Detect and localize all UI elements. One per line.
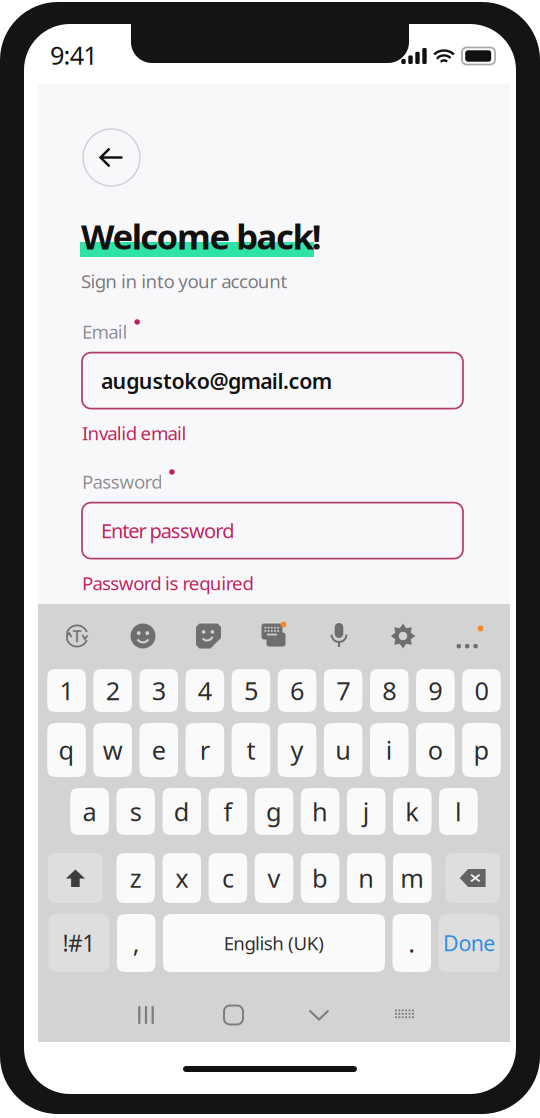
button[interactable]: Voice input <box>328 623 350 649</box>
button[interactable]: Hide keyboard <box>308 1006 330 1024</box>
staticText: 6 <box>290 674 304 707</box>
button[interactable]: 3 <box>139 669 178 712</box>
button[interactable]: 7 <box>324 669 362 712</box>
staticText: h <box>312 795 328 828</box>
staticText: q <box>58 733 74 767</box>
staticText: T <box>72 625 81 647</box>
button[interactable]: t <box>232 723 270 777</box>
staticText: English (UK) <box>224 931 324 955</box>
staticText: 2 <box>106 674 120 707</box>
staticText: 7 <box>336 674 350 707</box>
button[interactable]: Back <box>83 129 140 186</box>
staticText: a <box>83 795 97 828</box>
button[interactable]: 4 <box>185 669 224 712</box>
button[interactable]: 2 <box>93 669 132 712</box>
staticText: 9 <box>428 674 442 707</box>
staticText: o <box>428 733 443 767</box>
button[interactable]: 9 <box>416 669 455 712</box>
staticText: Password is required <box>82 571 254 595</box>
button[interactable]: Keyboard settings <box>390 623 415 648</box>
staticText: Invalid email <box>82 421 186 445</box>
button[interactable]: u <box>324 723 362 777</box>
button[interactable]: 5 <box>232 669 270 712</box>
staticText: s <box>130 795 142 828</box>
button[interactable]: x <box>162 853 201 903</box>
staticText: 3 <box>152 674 166 707</box>
button[interactable]: a <box>70 788 109 835</box>
staticText: 4 <box>198 674 212 707</box>
button[interactable]: e <box>139 723 178 777</box>
button[interactable]: augustoko@gmail.com <box>82 353 463 409</box>
staticText: d <box>174 795 190 828</box>
button[interactable]: Shift <box>48 853 103 903</box>
button[interactable]: Keyboard modes <box>261 623 287 648</box>
staticText: j <box>363 795 370 828</box>
button[interactable]: m <box>393 853 432 903</box>
staticText: 5 <box>244 674 258 707</box>
staticText: Welcome back! <box>81 213 322 259</box>
button[interactable]: Keyboard layout <box>395 1009 415 1020</box>
button[interactable]: Home <box>224 1005 243 1024</box>
button[interactable]: z <box>116 853 155 903</box>
button[interactable]: r <box>185 723 224 777</box>
staticText: Sign in into your account <box>81 269 288 293</box>
button[interactable]: f <box>209 788 247 835</box>
staticText: !#1 <box>62 928 95 958</box>
button[interactable]: . <box>392 914 431 972</box>
button[interactable]: w <box>93 723 132 777</box>
button[interactable]: s <box>116 788 155 835</box>
button[interactable]: g <box>255 788 293 835</box>
staticText: c <box>222 861 234 895</box>
button[interactable]: More options <box>456 623 484 648</box>
button[interactable]: 1 <box>47 669 86 712</box>
button[interactable]: d <box>162 788 201 835</box>
staticText: l <box>455 795 462 828</box>
staticText: augustoko@gmail.com <box>101 366 332 395</box>
staticText: z <box>130 861 142 895</box>
button[interactable]: !#1 <box>48 914 109 972</box>
button[interactable]: Done <box>439 914 500 972</box>
button[interactable]: y <box>278 723 316 777</box>
button[interactable]: j <box>347 788 385 835</box>
staticText: v <box>267 861 280 895</box>
button[interactable]: 8 <box>370 669 409 712</box>
staticText: 9:41 <box>50 38 97 72</box>
button[interactable]: b <box>301 853 339 903</box>
button[interactable]: 6 <box>278 669 316 712</box>
button[interactable]: k <box>393 788 432 835</box>
staticText: f <box>223 795 232 828</box>
button[interactable]: l <box>439 788 478 835</box>
button[interactable]: Translate <box>64 623 90 649</box>
button[interactable]: Recent apps <box>133 1005 159 1025</box>
button[interactable]: p <box>462 723 501 777</box>
button[interactable]: Enter password <box>82 503 463 559</box>
staticText: Email <box>82 319 127 344</box>
staticText: u <box>335 733 351 767</box>
button[interactable]: h <box>301 788 339 835</box>
staticText: e <box>152 733 166 767</box>
button[interactable]: Backspace <box>445 853 500 903</box>
staticText: g <box>266 795 282 828</box>
staticText: . <box>408 926 415 960</box>
staticText: 1 <box>59 674 73 707</box>
button[interactable]: n <box>347 853 385 903</box>
staticText: 8 <box>382 674 396 707</box>
staticText: y <box>291 733 304 767</box>
button[interactable]: q <box>47 723 86 777</box>
staticText: t <box>246 733 255 767</box>
staticText: i <box>386 733 393 767</box>
staticText: n <box>358 861 374 895</box>
button[interactable]: , <box>117 914 155 972</box>
button[interactable]: o <box>416 723 455 777</box>
button[interactable]: Stickers <box>196 623 221 648</box>
button[interactable]: 0 <box>462 669 501 712</box>
button[interactable]: i <box>370 723 409 777</box>
staticText: m <box>400 861 424 895</box>
button[interactable]: c <box>209 853 247 903</box>
staticText: k <box>405 795 419 828</box>
staticText: Enter password <box>101 517 234 544</box>
button[interactable]: Emoji <box>130 623 155 648</box>
staticText: , <box>133 926 140 960</box>
button[interactable]: v <box>255 853 293 903</box>
button[interactable]: English (UK) <box>163 914 385 972</box>
